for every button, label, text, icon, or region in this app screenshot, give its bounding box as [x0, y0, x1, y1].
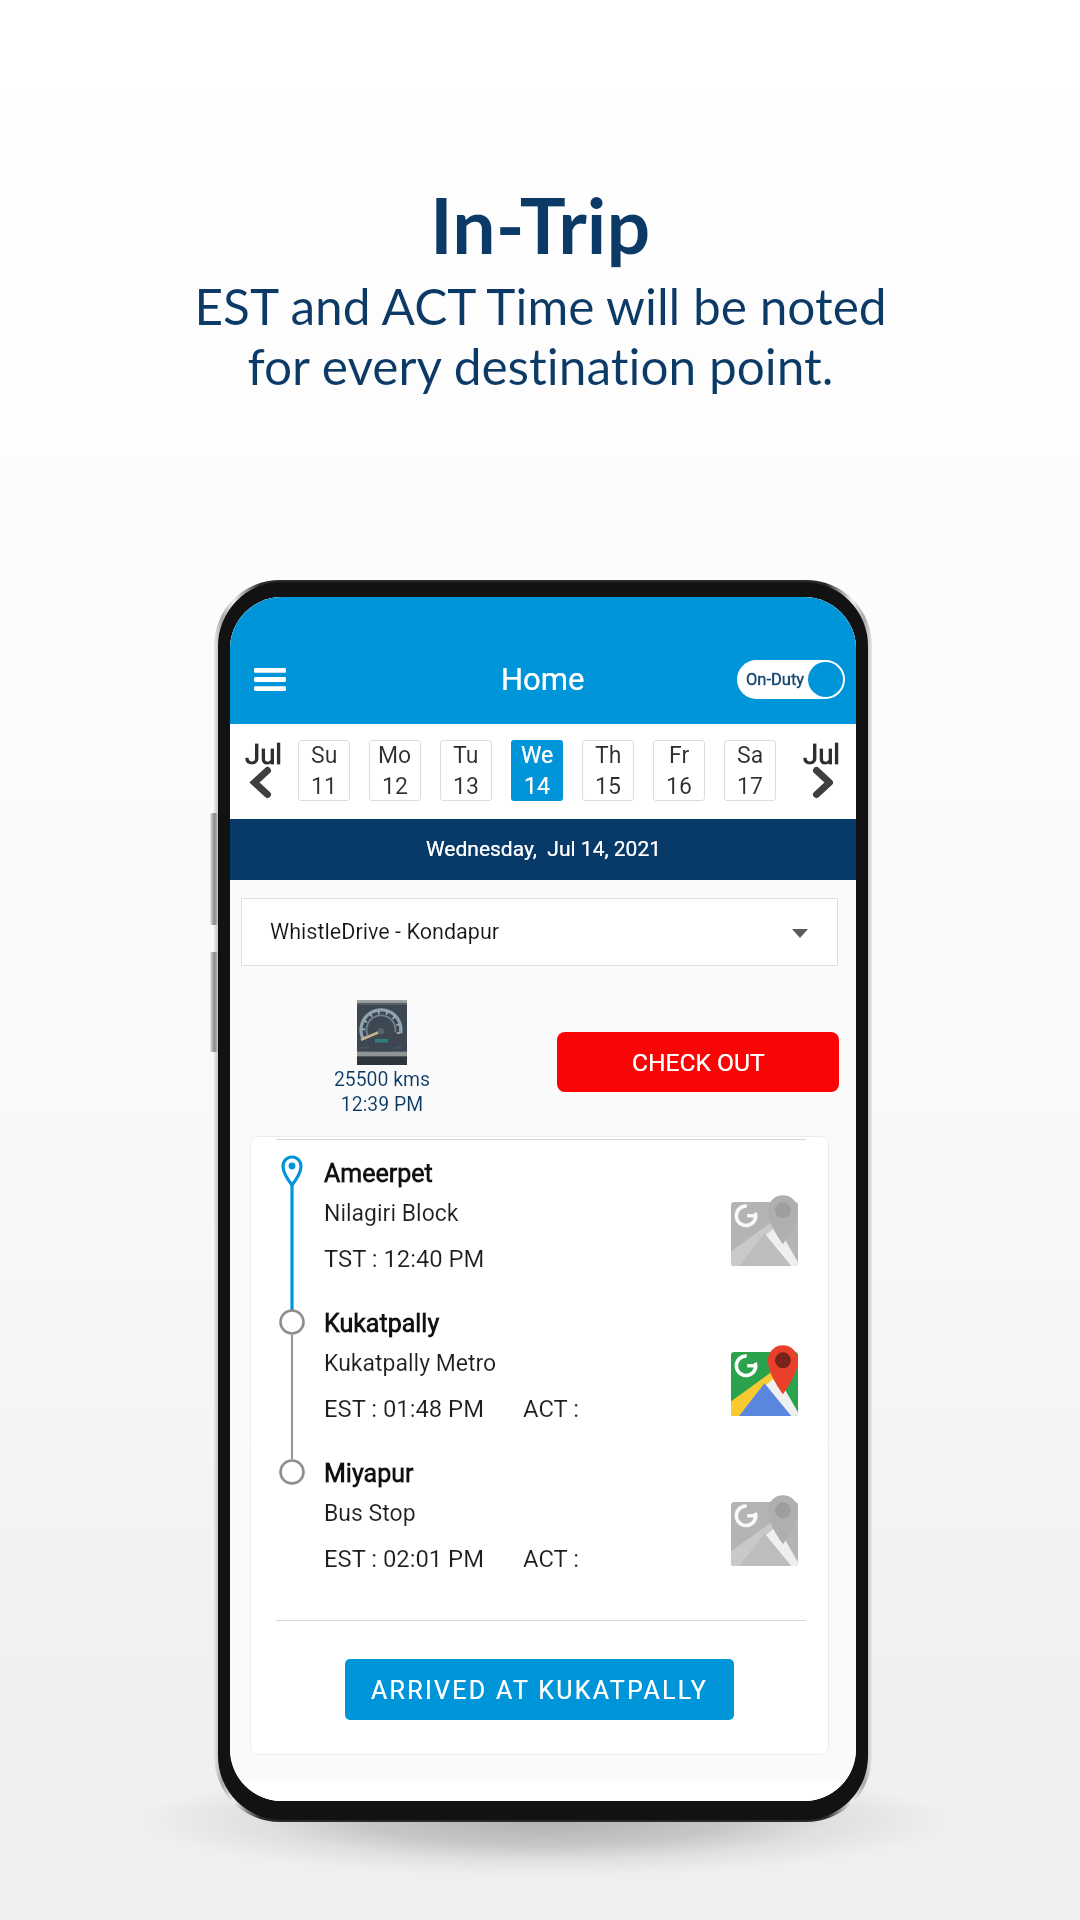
staticText: Fr [669, 742, 690, 769]
staticText: WhistleDrive - Kondapur [270, 919, 500, 944]
staticText: Nilagiri Block [324, 1200, 459, 1227]
staticText: Su [311, 742, 338, 769]
staticText: EST and ACT Time will be noted for every… [194, 276, 887, 396]
button[interactable]: Previous month [240, 738, 288, 800]
staticText: Mo [378, 742, 412, 769]
button[interactable]: We [511, 740, 563, 801]
staticText: TST : 12:40 PM [324, 1245, 485, 1273]
staticText: Miyapur [324, 1459, 414, 1488]
staticText: Tu [453, 742, 479, 769]
staticText: Ameerpet [324, 1159, 433, 1188]
staticText: CHECK OUT [632, 1048, 765, 1077]
button[interactable]: Open in Maps [728, 1190, 802, 1264]
staticText: 12 [382, 773, 408, 800]
staticText: EST : 01:48 PM [324, 1395, 484, 1423]
staticText: We [521, 742, 554, 769]
button[interactable]: Tu [440, 740, 492, 801]
button[interactable]: Next month [798, 738, 846, 800]
staticText: Th [595, 742, 622, 769]
button[interactable]: Open in Maps [728, 1490, 802, 1564]
button[interactable]: WhistleDrive - Kondapur [241, 898, 838, 966]
staticText: ACT : [523, 1395, 579, 1423]
button[interactable]: On-Duty [737, 660, 845, 699]
staticText: Bus Stop [324, 1500, 416, 1527]
staticText: 15 [595, 773, 621, 800]
button[interactable]: Odometer photo [357, 1000, 407, 1065]
staticText: Jul [245, 738, 283, 770]
staticText: 14 [524, 773, 550, 800]
button[interactable]: Su [298, 740, 350, 801]
staticText: 12:39 PM [306, 1093, 458, 1116]
staticText: On-Duty [746, 670, 805, 689]
button[interactable]: Sa [724, 740, 776, 801]
staticText: EST : 02:01 PM [324, 1545, 484, 1573]
staticText: In-Trip [430, 178, 651, 270]
staticText: Home [501, 661, 585, 697]
button[interactable]: Th [582, 740, 634, 801]
staticText: ARRIVED AT KUKATPALLY [371, 1676, 708, 1705]
button[interactable]: Open in Maps [728, 1340, 802, 1414]
button[interactable]: Fr [653, 740, 705, 801]
staticText: 25500 kms [306, 1068, 458, 1091]
button[interactable]: ARRIVED AT KUKATPALLY [345, 1659, 734, 1720]
staticText: 17 [737, 773, 763, 800]
staticText: 13 [453, 773, 479, 800]
button[interactable]: Menu [244, 656, 296, 702]
staticText: Sa [737, 742, 764, 769]
staticText: Wednesday, Jul 14, 2021 [426, 837, 661, 862]
button[interactable]: Mo [369, 740, 421, 801]
staticText: Jul [803, 738, 841, 770]
staticText: 11 [311, 773, 337, 800]
staticText: Kukatpally [324, 1309, 440, 1338]
button[interactable]: CHECK OUT [557, 1032, 839, 1092]
staticText: 16 [666, 773, 692, 800]
staticText: ACT : [523, 1545, 579, 1573]
staticText: Kukatpally Metro [324, 1350, 497, 1377]
